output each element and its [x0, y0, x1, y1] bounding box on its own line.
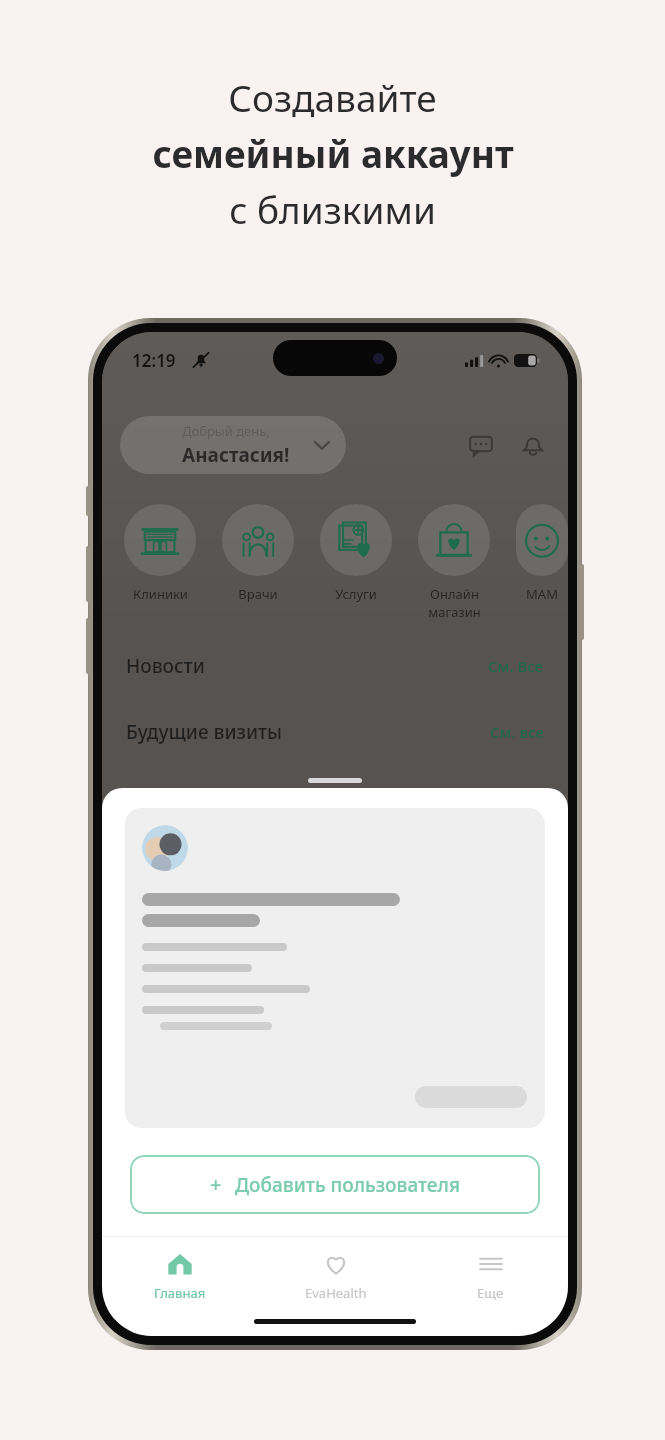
button[interactable]: [125, 808, 545, 1128]
button[interactable]: Notifications: [520, 432, 546, 458]
staticText: См. Все: [488, 656, 544, 676]
staticText: Еще: [477, 1284, 504, 1302]
other: Expand: [312, 435, 332, 455]
staticText: Анастасия!: [182, 442, 290, 468]
staticText: 12:19: [132, 349, 176, 372]
staticText: +: [210, 1171, 222, 1198]
staticText: семейный аккаунт: [152, 128, 514, 178]
button[interactable]: MAM: [516, 504, 568, 603]
button[interactable]: Клиники: [124, 504, 196, 603]
staticText: магазин: [428, 603, 481, 621]
staticText: Добрый день,: [182, 422, 270, 440]
button[interactable]: EvaHealth: [258, 1251, 413, 1302]
staticText: Добавить пользователя: [235, 1172, 460, 1198]
staticText: MAM: [526, 585, 558, 603]
staticText: Врачи: [238, 585, 278, 603]
button[interactable]: Будущие визиты: [126, 719, 544, 745]
button[interactable]: +: [130, 1155, 540, 1214]
staticText: с близкими: [229, 184, 436, 234]
button[interactable]: Врачи: [222, 504, 294, 603]
button[interactable]: Еще: [413, 1251, 568, 1302]
staticText: Новости: [126, 653, 205, 679]
button[interactable]: Добрый день,: [120, 416, 346, 474]
button[interactable]: Главная: [102, 1251, 258, 1302]
staticText: Создавайте: [228, 72, 437, 122]
staticText: Будущие визиты: [126, 719, 283, 745]
staticText: Клиники: [133, 585, 188, 603]
button[interactable]: Услуги: [320, 504, 392, 603]
staticText: EvaHealth: [305, 1284, 367, 1302]
staticText: Онлайн: [430, 585, 479, 603]
button[interactable]: Онлайн: [418, 504, 490, 621]
staticText: Услуги: [335, 585, 377, 603]
staticText: Главная: [154, 1284, 206, 1302]
staticText: См. все: [490, 722, 544, 742]
button[interactable]: Новости: [126, 653, 544, 679]
button[interactable]: Messages: [468, 432, 494, 458]
